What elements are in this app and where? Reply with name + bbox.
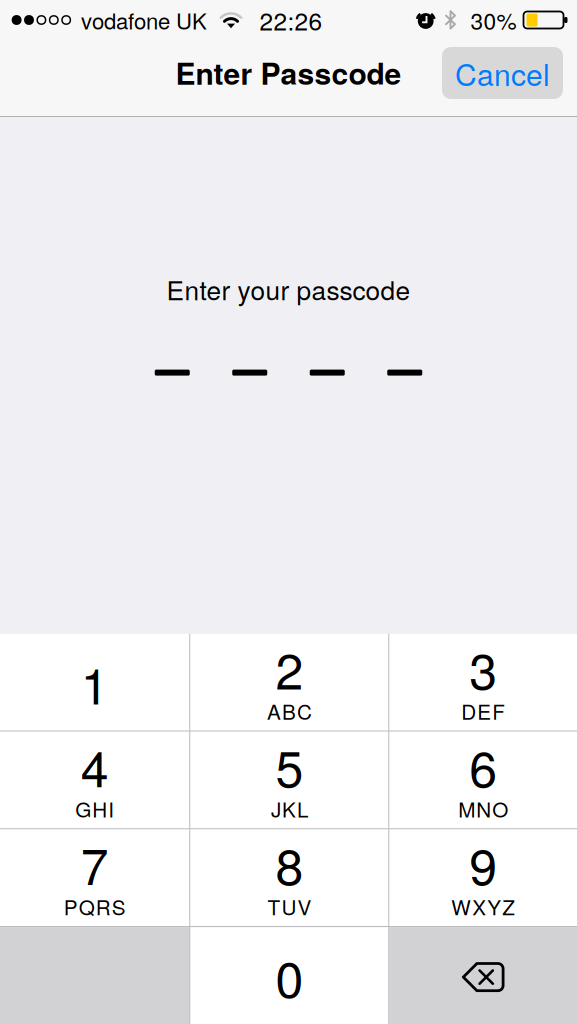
staticText: Enter Passcode bbox=[175, 51, 401, 94]
button[interactable]: Cancel bbox=[442, 47, 563, 99]
staticText: W X Y Z bbox=[451, 892, 515, 921]
staticText: J K L bbox=[271, 794, 308, 823]
button[interactable]: 9 bbox=[389, 829, 577, 926]
button[interactable]: 2 bbox=[190, 634, 388, 731]
staticText: 6 bbox=[469, 730, 497, 801]
staticText: Enter your passcode bbox=[166, 270, 410, 308]
button[interactable]: 7 bbox=[0, 829, 189, 926]
button[interactable]: 6 bbox=[389, 732, 577, 828]
staticText: 7 bbox=[81, 828, 109, 899]
staticText: 8 bbox=[275, 828, 303, 899]
staticText: A B C bbox=[267, 696, 312, 726]
button[interactable]: 4 bbox=[0, 732, 189, 828]
staticText: P Q R S bbox=[64, 892, 126, 921]
staticText: 22:26 bbox=[260, 2, 323, 37]
staticText: 30% bbox=[470, 4, 516, 36]
staticText: Cancel bbox=[455, 51, 550, 94]
button[interactable]: 5 bbox=[190, 732, 388, 828]
staticText: 9 bbox=[469, 828, 497, 899]
staticText: 0 bbox=[275, 940, 303, 1012]
button[interactable]: Delete bbox=[389, 927, 577, 1024]
button[interactable]: 8 bbox=[190, 829, 388, 926]
staticText: 1 bbox=[81, 647, 109, 719]
button[interactable]: 1 bbox=[0, 634, 189, 731]
staticText: vodafone UK bbox=[81, 4, 207, 36]
staticText: D E F bbox=[461, 696, 505, 726]
staticText: 2 bbox=[275, 632, 303, 704]
button[interactable]: 0 bbox=[190, 927, 388, 1024]
staticText: 4 bbox=[81, 730, 109, 801]
staticText: M N O bbox=[458, 794, 508, 823]
staticText: T U V bbox=[267, 892, 311, 921]
button[interactable]: 3 bbox=[389, 634, 577, 731]
staticText: 5 bbox=[275, 730, 303, 801]
staticText: 3 bbox=[469, 632, 497, 704]
staticText: G H I bbox=[75, 794, 114, 823]
